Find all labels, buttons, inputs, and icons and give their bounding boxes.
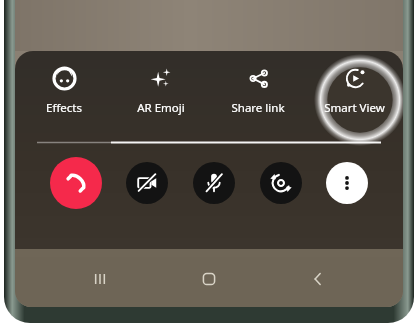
button[interactable]: End call <box>50 157 102 209</box>
staticText: Smart View <box>324 100 385 116</box>
button[interactable]: Switch camera <box>260 162 302 204</box>
button[interactable]: Recent apps <box>76 257 124 301</box>
button[interactable]: Share link <box>209 65 306 127</box>
button[interactable]: Turn camera off <box>126 162 168 204</box>
staticText: Effects <box>46 100 82 116</box>
button[interactable]: Back <box>294 257 342 301</box>
button[interactable] <box>326 162 368 204</box>
button[interactable]: Smart View <box>306 65 403 127</box>
button[interactable]: Mute microphone <box>193 162 235 204</box>
staticText: Share link <box>231 100 285 116</box>
button[interactable]: Effects <box>15 65 112 127</box>
button[interactable]: Home <box>185 257 233 301</box>
staticText: AR Emoji <box>137 100 185 116</box>
button[interactable]: AR Emoji <box>112 65 209 127</box>
